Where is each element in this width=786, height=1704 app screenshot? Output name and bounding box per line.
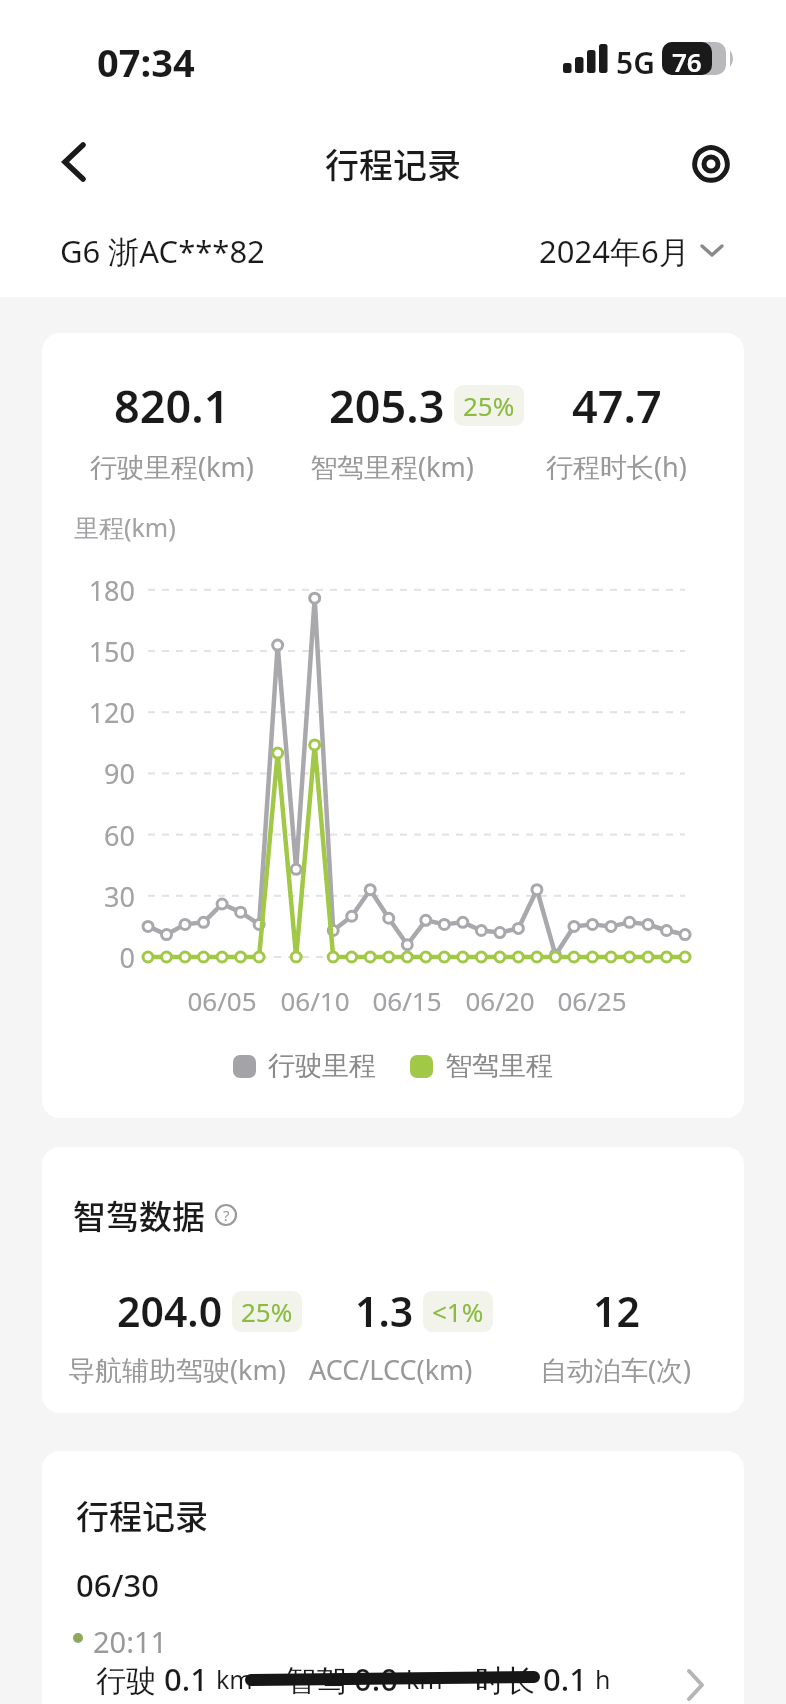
staticText: 06/05: [177, 983, 267, 1018]
staticText: 智驾里程(km): [310, 448, 474, 485]
staticText: 2024年6月: [539, 230, 690, 272]
staticText: 行驶里程: [268, 1049, 376, 1083]
staticText: 120: [60, 694, 135, 731]
staticText: 25%: [463, 388, 515, 423]
staticText: 0: [60, 939, 135, 976]
button[interactable]: [40, 122, 106, 202]
staticText: 0.0: [354, 1658, 406, 1700]
button[interactable]: ?: [213, 1202, 239, 1228]
staticText: 0.1: [543, 1658, 595, 1700]
staticText: km: [406, 1662, 443, 1696]
staticText: 时长: [475, 1659, 543, 1700]
staticText: 行驶: [96, 1659, 164, 1700]
staticText: 60: [60, 817, 135, 854]
staticText: ?: [223, 1205, 230, 1225]
staticText: 06/10: [270, 983, 360, 1018]
staticText: 205.3: [329, 375, 445, 436]
staticText: 0.1: [164, 1658, 216, 1700]
staticText: 智驾里程: [445, 1049, 553, 1083]
staticText: <1%: [432, 1294, 484, 1329]
button[interactable]: 行驶: [42, 1658, 744, 1704]
staticText: 07:34: [97, 36, 195, 88]
staticText: 150: [60, 633, 135, 670]
button[interactable]: 2024年6月: [539, 230, 724, 272]
staticText: 76: [672, 44, 702, 79]
staticText: 820.1: [114, 375, 230, 436]
staticText: 智驾数据: [73, 1191, 205, 1239]
staticText: 204.0: [117, 1283, 223, 1339]
staticText: 行程记录: [325, 139, 461, 188]
staticText: 06/20: [455, 983, 545, 1018]
staticText: 智驾: [286, 1659, 354, 1700]
staticText: 20:11: [93, 1622, 168, 1661]
staticText: 自动泊车(次): [540, 1351, 692, 1388]
staticText: 47.7: [572, 375, 662, 436]
staticText: h: [595, 1662, 611, 1696]
staticText: 06/25: [547, 983, 637, 1018]
staticText: 行驶里程(km): [90, 448, 254, 485]
staticText: km: [216, 1662, 253, 1696]
staticText: 30: [60, 878, 135, 915]
staticText: 180: [60, 572, 135, 609]
staticText: G6 浙AC***82: [60, 230, 265, 272]
staticText: 行程记录: [76, 1491, 208, 1539]
staticText: ACC/LCC(km): [309, 1351, 473, 1388]
staticText: 25%: [241, 1294, 293, 1329]
staticText: 导航辅助驾驶(km): [68, 1351, 286, 1388]
staticText: 里程(km): [74, 510, 176, 544]
staticText: 12: [593, 1283, 640, 1339]
staticText: 5G: [616, 42, 655, 83]
staticText: 1.3: [355, 1283, 414, 1339]
staticText: 06/30: [76, 1564, 159, 1606]
button[interactable]: [676, 124, 746, 204]
staticText: 06/15: [362, 983, 452, 1018]
staticText: 行程时长(h): [546, 448, 687, 485]
staticText: 90: [60, 755, 135, 792]
